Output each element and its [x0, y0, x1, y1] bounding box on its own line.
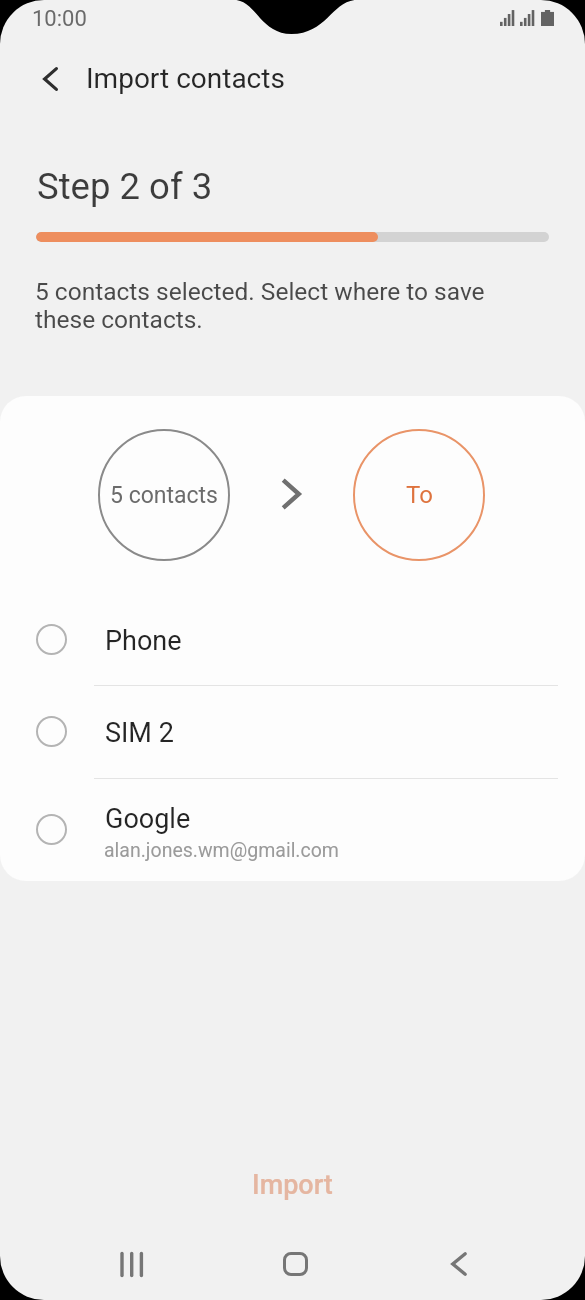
- staticText: alan.jones.wm@gmail.com: [104, 839, 339, 862]
- staticText: Phone: [105, 625, 182, 657]
- button[interactable]: SIM 2: [0, 687, 585, 779]
- button[interactable]: Back: [24, 53, 76, 105]
- button[interactable]: Phone: [0, 595, 585, 687]
- button[interactable]: Import: [0, 1145, 585, 1225]
- staticText: Google: [105, 803, 191, 835]
- button[interactable]: 5 contacts: [98, 429, 230, 561]
- staticText: SIM 2: [105, 717, 174, 749]
- staticText: 5 contacts selected. Select where to sav…: [35, 277, 485, 334]
- staticText: 10:00: [32, 6, 87, 32]
- button[interactable]: Google: [0, 779, 585, 879]
- staticText: 5 contacts: [110, 482, 218, 509]
- staticText: To: [406, 481, 433, 509]
- button[interactable]: Back: [409, 1228, 509, 1300]
- staticText: Import contacts: [86, 62, 285, 95]
- staticText: Import: [252, 1169, 333, 1201]
- staticText: Step 2 of 3: [37, 165, 213, 208]
- button[interactable]: Home: [245, 1228, 345, 1300]
- button[interactable]: To: [353, 429, 485, 561]
- button[interactable]: Recent apps: [81, 1228, 181, 1300]
